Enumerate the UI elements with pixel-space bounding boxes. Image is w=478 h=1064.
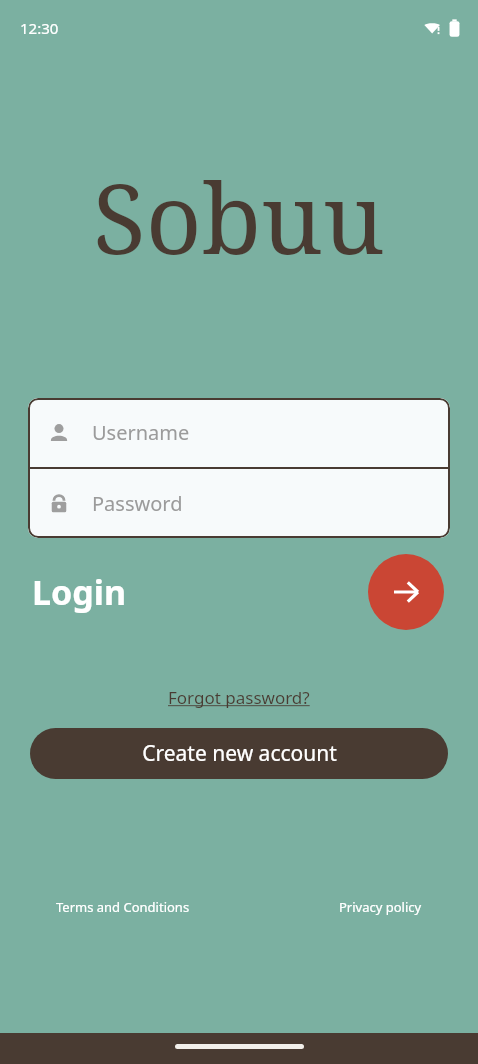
button[interactable]: Username (28, 398, 450, 467)
button[interactable]: Forgot password? (160, 684, 318, 711)
staticText: Create new account (142, 739, 337, 768)
staticText: 12:30 (20, 18, 59, 38)
button[interactable]: Password (28, 469, 450, 538)
staticText: Login (32, 569, 127, 615)
staticText: Password (92, 490, 183, 517)
staticText: Forgot password? (168, 686, 310, 709)
button[interactable]: Terms and Conditions (52, 894, 194, 920)
staticText: Username (92, 419, 190, 446)
button[interactable]: Login (28, 565, 131, 619)
button[interactable]: Privacy policy (335, 894, 426, 920)
button[interactable]: Submit login (368, 554, 444, 630)
staticText: Sobuu (93, 150, 385, 282)
staticText: Privacy policy (339, 898, 422, 916)
staticText: Terms and Conditions (56, 898, 190, 916)
button[interactable]: Create new account (30, 728, 448, 779)
